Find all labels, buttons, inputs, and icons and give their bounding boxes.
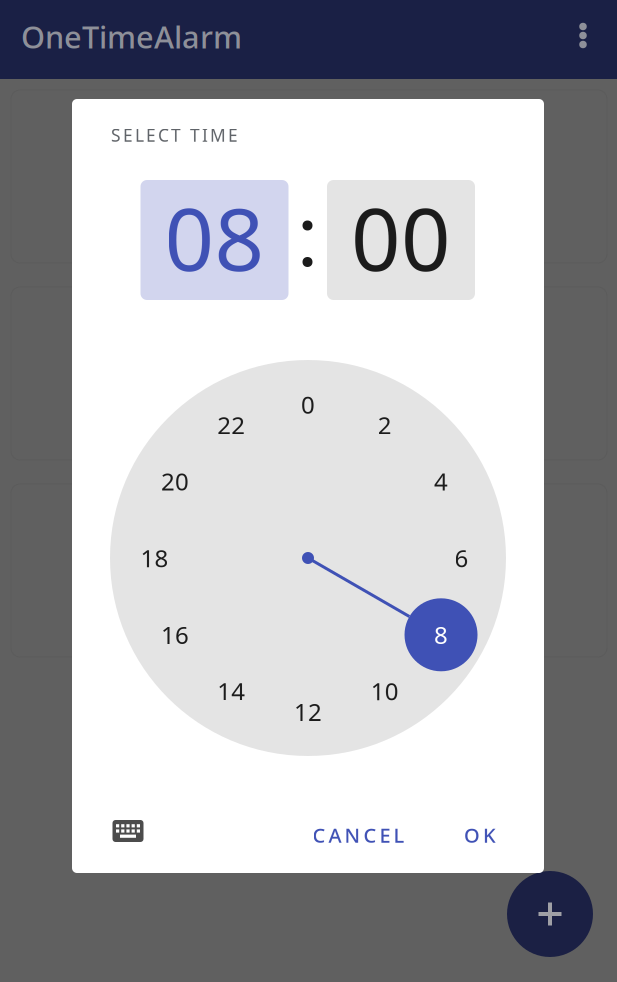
staticText: 0	[301, 388, 315, 420]
staticText: 00	[351, 179, 451, 295]
staticText: 10	[371, 675, 399, 707]
staticText: 20	[161, 465, 189, 497]
staticText: 4	[434, 465, 448, 497]
staticText: 8	[434, 619, 448, 651]
staticText: 14	[217, 675, 245, 707]
button[interactable]: More options	[563, 15, 603, 63]
button[interactable]: C A N C E L	[303, 815, 413, 855]
button[interactable]: Switch to text input	[112, 820, 143, 842]
button[interactable]: O K	[458, 815, 502, 855]
staticText: 6	[455, 542, 469, 574]
button[interactable]: 08	[140, 180, 288, 300]
staticText: 22	[217, 409, 245, 441]
staticText: 08	[164, 179, 264, 295]
button[interactable]: 00	[327, 180, 475, 300]
staticText: S E L E C T T I M E	[111, 123, 238, 146]
staticText: OneTimeAlarm	[21, 16, 242, 57]
staticText: 16	[161, 619, 189, 651]
staticText: O K	[464, 822, 496, 848]
staticText: 18	[140, 542, 168, 574]
staticText: C A N C E L	[312, 822, 404, 848]
staticText: 12	[294, 696, 322, 728]
button[interactable]: Add alarm	[507, 871, 593, 957]
staticText: 2	[378, 409, 392, 441]
